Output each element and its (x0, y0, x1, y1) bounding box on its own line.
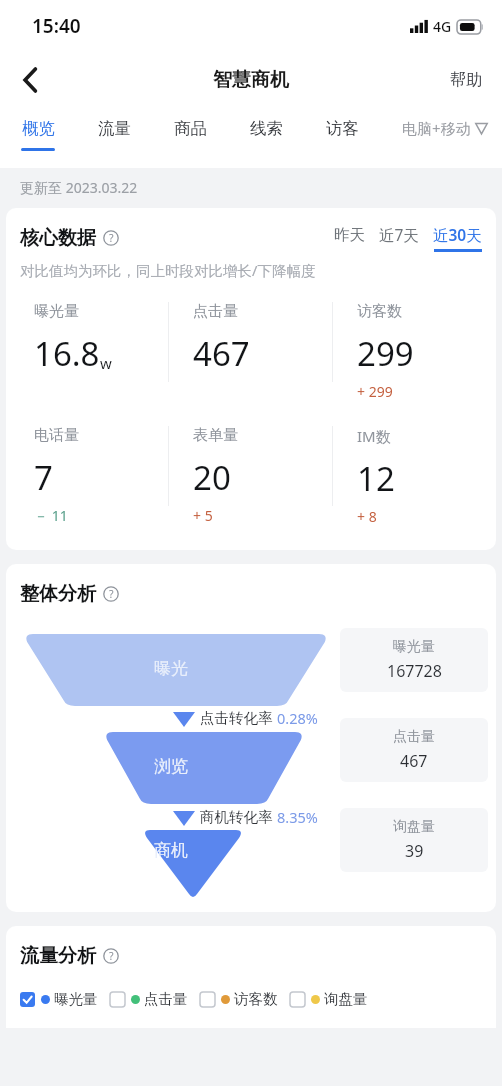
staticText: 核心数据 (20, 226, 96, 250)
staticText: 近7天 (379, 224, 419, 245)
staticText: 更新至 2023.03.22 (20, 178, 138, 197)
staticText: ? (109, 231, 114, 245)
button[interactable]: 昨天 (334, 225, 365, 252)
staticText: 15:40 (32, 13, 81, 39)
staticText: 帮助 (450, 70, 482, 90)
button[interactable]: 点击量 (340, 718, 488, 782)
button[interactable]: 概览 (0, 108, 76, 151)
staticText: 昨天 (334, 225, 365, 245)
staticText: 曝光量 (393, 638, 435, 656)
staticText: 点击转化率 (200, 709, 273, 727)
staticText: 0.28% (277, 708, 318, 728)
button[interactable]: 询盘量 (290, 990, 368, 1008)
staticText: 电脑+移动 (402, 118, 471, 138)
button[interactable]: 近7天 (379, 224, 419, 252)
staticText: － 11 (34, 506, 68, 525)
staticText: 电话量 (34, 426, 79, 445)
staticText: 467 (193, 331, 250, 376)
button[interactable]: ? (102, 229, 120, 247)
staticText: 8.35% (277, 807, 318, 827)
button[interactable]: 线索 (228, 108, 304, 148)
staticText: w (100, 353, 112, 373)
staticText: ? (109, 587, 114, 601)
staticText: 近30天 (433, 224, 482, 245)
button[interactable]: 近30天 (433, 224, 482, 252)
staticText: + 5 (193, 506, 213, 525)
staticText: 线索 (250, 118, 283, 139)
button[interactable]: 询盘量 (340, 808, 488, 872)
staticText: 商机 (154, 840, 188, 861)
button[interactable]: 流量 (76, 108, 152, 148)
staticText: 点击量 (393, 728, 435, 746)
staticText: 流量 (98, 118, 131, 139)
staticText: 智慧商机 (213, 68, 289, 92)
staticText: 299 (357, 331, 414, 376)
staticText: 询盘量 (393, 818, 435, 836)
staticText: 流量分析 (20, 944, 96, 968)
button[interactable]: 曝光量 (20, 990, 98, 1008)
button[interactable]: 点击量 (110, 990, 188, 1008)
staticText: 20 (193, 455, 231, 500)
staticText: 点击量 (193, 302, 238, 321)
button[interactable]: 访客 (304, 108, 380, 148)
staticText: 467 (400, 750, 428, 772)
button[interactable]: 帮助 (430, 56, 502, 104)
staticText: 曝光 (154, 658, 188, 679)
button[interactable]: Back (6, 56, 54, 104)
button[interactable]: 电脑+移动 (402, 118, 488, 138)
button[interactable]: 访客数 (200, 990, 278, 1008)
staticText: 对比值均为环比，同上时段对比增长/下降幅度 (20, 260, 316, 280)
staticText: 访客数 (234, 990, 278, 1008)
staticText: 商品 (174, 118, 207, 139)
staticText: 16.8 (34, 331, 100, 376)
staticText: IM数 (357, 426, 391, 446)
staticText: 表单量 (193, 426, 238, 445)
staticText: + 299 (357, 382, 393, 401)
staticText: 曝光量 (34, 302, 79, 321)
staticText: 点击量 (144, 990, 188, 1008)
staticText: 12 (357, 456, 395, 501)
staticText: 询盘量 (324, 990, 368, 1008)
button[interactable]: 商品 (152, 108, 228, 148)
button[interactable]: ? (102, 585, 120, 603)
staticText: ? (109, 949, 114, 963)
staticText: 概览 (22, 118, 55, 139)
staticText: 访客数 (357, 302, 402, 321)
staticText: 4G (433, 17, 452, 36)
button[interactable]: ? (102, 947, 120, 965)
staticText: 整体分析 (20, 582, 96, 606)
staticText: 39 (405, 840, 424, 862)
staticText: + 8 (357, 507, 377, 526)
staticText: 曝光量 (54, 990, 98, 1008)
staticText: 7 (34, 455, 53, 500)
staticText: 167728 (387, 660, 442, 682)
staticText: 浏览 (154, 756, 188, 777)
button[interactable]: 曝光量 (340, 628, 488, 692)
staticText: 访客 (326, 118, 359, 139)
staticText: 商机转化率 (200, 808, 273, 826)
